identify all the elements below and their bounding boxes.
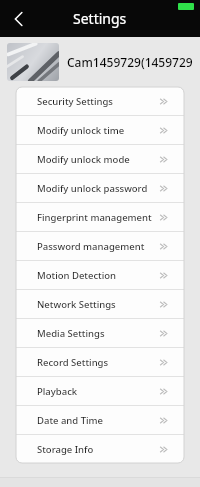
staticText: Password management xyxy=(37,240,145,253)
button[interactable]: Network Settings xyxy=(16,290,184,318)
staticText: Media Settings xyxy=(37,327,105,340)
button[interactable]: Media Settings xyxy=(16,319,184,347)
button[interactable]: Password management xyxy=(16,232,184,260)
button[interactable]: Playback xyxy=(16,377,184,405)
button[interactable]: Date and Time xyxy=(16,406,184,434)
staticText: Record Settings xyxy=(37,356,109,369)
button[interactable]: Record Settings xyxy=(16,348,184,376)
other: Battery xyxy=(178,3,194,10)
button[interactable]: Modify unlock mode xyxy=(16,145,184,173)
button[interactable]: Motion Detection xyxy=(16,261,184,289)
staticText: Network Settings xyxy=(37,298,116,311)
button[interactable]: Modify unlock time xyxy=(16,116,184,144)
staticText: Modify unlock time xyxy=(37,124,125,137)
staticText: Modify unlock password xyxy=(37,182,148,195)
staticText: Playback xyxy=(37,385,78,398)
staticText: Security Settings xyxy=(37,95,113,108)
staticText: Motion Detection xyxy=(37,269,117,282)
button[interactable]: Modify unlock password xyxy=(16,174,184,202)
staticText: Fingerprint management xyxy=(37,211,152,224)
staticText: Storage Info xyxy=(37,443,94,456)
button[interactable]: Camera snapshot xyxy=(7,43,59,81)
staticText: Date and Time xyxy=(37,414,104,427)
staticText: Settings xyxy=(73,9,127,28)
staticText: Modify unlock mode xyxy=(37,153,130,166)
button[interactable]: Security Settings xyxy=(16,87,184,115)
button[interactable]: Storage Info xyxy=(16,435,184,463)
button[interactable]: Back xyxy=(2,2,36,36)
staticText: Cam1459729(1459729) xyxy=(67,54,194,70)
button[interactable]: Fingerprint management xyxy=(16,203,184,231)
